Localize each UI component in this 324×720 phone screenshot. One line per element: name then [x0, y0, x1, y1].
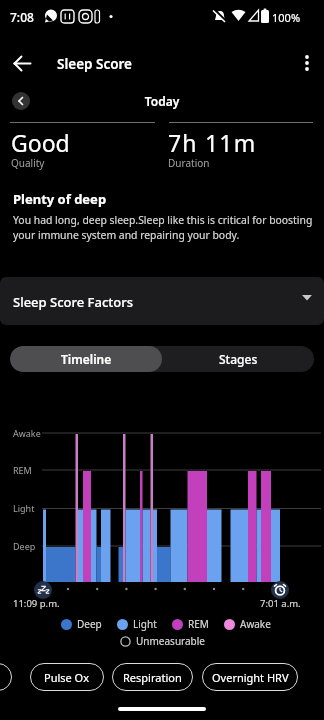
staticText: Timeline	[61, 351, 112, 367]
staticText: Light	[13, 502, 35, 514]
staticText: Unmeasurable	[136, 634, 205, 648]
staticText: Duration	[168, 156, 210, 170]
staticText: You had long, deep sleep.Sleep like this…	[13, 213, 313, 242]
button[interactable]: Pulse Ox	[30, 663, 104, 691]
staticText: Awake	[240, 617, 271, 631]
staticText: Quality	[11, 156, 45, 170]
button[interactable]: Respiration	[112, 663, 193, 691]
button[interactable]: Sleep Score Factors	[0, 277, 324, 325]
staticText: Deep	[77, 617, 102, 631]
staticText: Plenty of deep	[13, 190, 107, 208]
button[interactable]	[8, 49, 36, 77]
staticText: 7:08	[10, 9, 34, 25]
staticText: Respiration	[123, 670, 182, 685]
staticText: Pulse Ox	[44, 670, 90, 685]
button[interactable]: Stages	[162, 346, 314, 372]
staticText: REM	[13, 464, 32, 476]
staticText: Good	[11, 127, 70, 158]
button[interactable]: Overnight HRV	[202, 663, 298, 691]
button[interactable]: Timeline	[10, 346, 162, 372]
button[interactable]	[293, 49, 321, 77]
staticText: Stages	[219, 351, 258, 367]
staticText: Sleep Score	[57, 55, 133, 73]
button[interactable]	[0, 663, 12, 691]
staticText: Awake	[13, 427, 41, 439]
staticText: Sleep Score Factors	[13, 293, 134, 311]
staticText: Overnight HRV	[212, 670, 289, 685]
staticText: REM	[188, 617, 209, 631]
button[interactable]	[12, 92, 30, 110]
staticText: Today	[0, 93, 324, 109]
staticText: 100%	[272, 10, 301, 25]
staticText: 7h 11m	[168, 127, 257, 158]
staticText: 11:09 p.m.	[13, 597, 60, 610]
staticText: Deep	[13, 540, 36, 552]
staticText: Light	[133, 617, 157, 631]
staticText: 7:01 a.m.	[260, 597, 301, 610]
